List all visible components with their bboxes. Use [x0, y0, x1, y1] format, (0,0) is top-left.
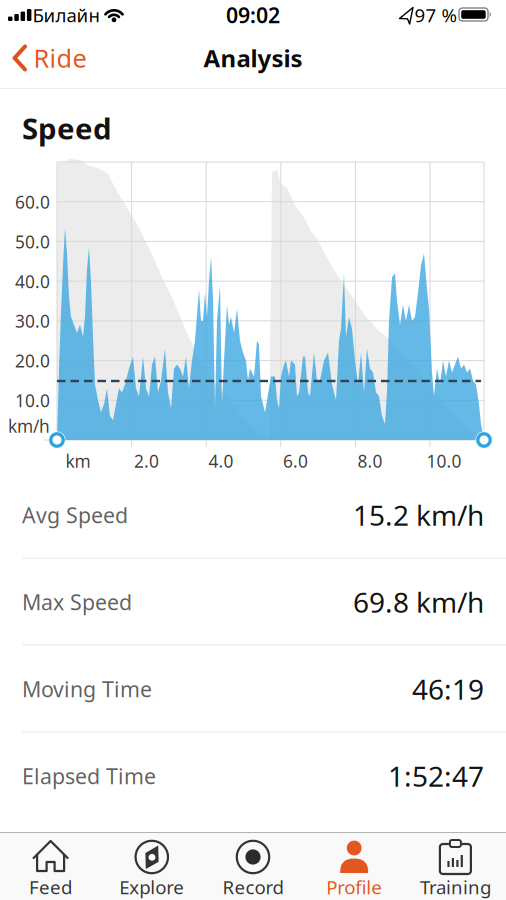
button[interactable]: Profile [304, 833, 405, 900]
staticText: Max Speed [22, 588, 132, 616]
staticText: Moving Time [22, 675, 152, 703]
staticText: 15.2 km/h [353, 496, 484, 534]
staticText: Explore [119, 875, 184, 899]
staticText: km [65, 449, 90, 472]
staticText: 60.0 [15, 190, 50, 213]
staticText: Билайн [32, 3, 99, 27]
staticText: Analysis [203, 42, 302, 74]
staticText: Speed [22, 108, 112, 147]
staticText: 10.0 [15, 389, 50, 412]
staticText: Training [420, 875, 491, 899]
button[interactable]: Explore [101, 833, 202, 900]
staticText: 69.8 km/h [353, 583, 484, 621]
staticText: 8.0 [357, 449, 382, 472]
staticText: 6.0 [283, 449, 308, 472]
button[interactable]: Feed [0, 833, 101, 900]
staticText: Avg Speed [22, 501, 128, 529]
button[interactable]: Training [405, 833, 506, 900]
staticText: Profile [326, 875, 382, 899]
button[interactable]: Ride [0, 41, 86, 75]
staticText: 50.0 [15, 230, 50, 253]
staticText: 97 % [414, 3, 457, 27]
staticText: 09:02 [226, 1, 280, 29]
staticText: 4.0 [208, 449, 233, 472]
staticText: 46:19 [412, 670, 484, 708]
staticText: Elapsed Time [22, 762, 156, 790]
staticText: Record [222, 875, 283, 899]
staticText: 20.0 [15, 349, 50, 372]
staticText: 1:52:47 [388, 757, 484, 795]
staticText: km/h [8, 414, 50, 437]
staticText: 40.0 [15, 270, 50, 293]
staticText: 10.0 [426, 449, 461, 472]
staticText: 30.0 [15, 310, 50, 333]
staticText: Feed [29, 875, 72, 899]
staticText: Ride [33, 41, 86, 75]
button[interactable]: Record [202, 833, 304, 900]
staticText: 2.0 [134, 449, 159, 472]
